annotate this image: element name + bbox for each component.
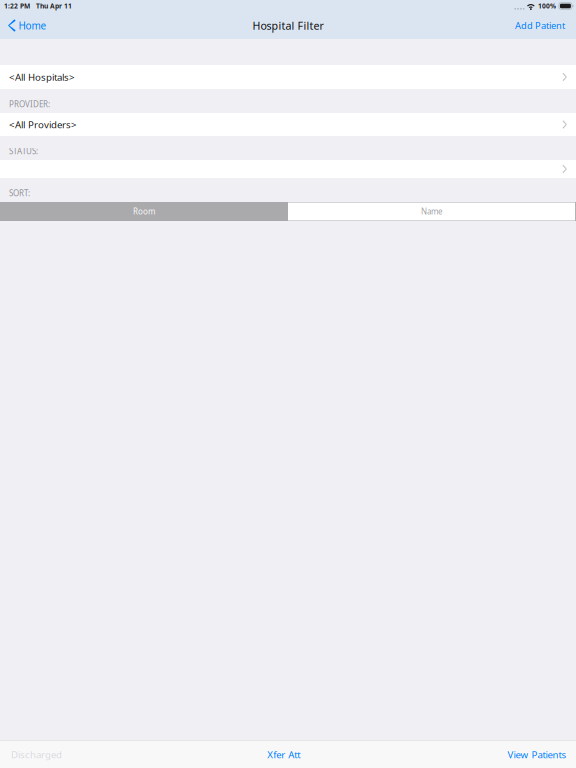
- staticText: Hospital Filter: [252, 18, 323, 33]
- button[interactable]: Xfer Att: [257, 741, 314, 768]
- button[interactable]: Add Patient: [507, 12, 573, 39]
- staticText: View Patients: [507, 748, 566, 761]
- staticText: PROVIDER:: [9, 99, 50, 109]
- staticText: <All Providers>: [9, 118, 77, 131]
- button[interactable]: Room: [0, 202, 288, 221]
- button[interactable]: <All Hospitals>: [0, 65, 576, 89]
- staticText: Discharged: [11, 748, 62, 761]
- button[interactable]: View Patients: [496, 741, 576, 768]
- staticText: SORT:: [9, 188, 30, 198]
- staticText: 100%: [538, 1, 556, 11]
- staticText: Home: [18, 19, 46, 32]
- staticText: 1:22 PM: [4, 1, 30, 11]
- staticText: Name: [421, 206, 443, 217]
- button[interactable]: <All Providers>: [0, 113, 576, 136]
- button[interactable]: Discharged: [0, 741, 74, 768]
- staticText: Xfer Att: [267, 748, 300, 761]
- staticText: Add Patient: [515, 19, 565, 32]
- staticText: Room: [133, 206, 155, 217]
- staticText: <All Hospitals>: [9, 70, 75, 84]
- button[interactable]: Home: [1, 12, 53, 39]
- staticText: STATUS:: [9, 146, 38, 156]
- staticText: Thu Apr 11: [36, 1, 72, 11]
- button[interactable]: Name: [288, 202, 576, 221]
